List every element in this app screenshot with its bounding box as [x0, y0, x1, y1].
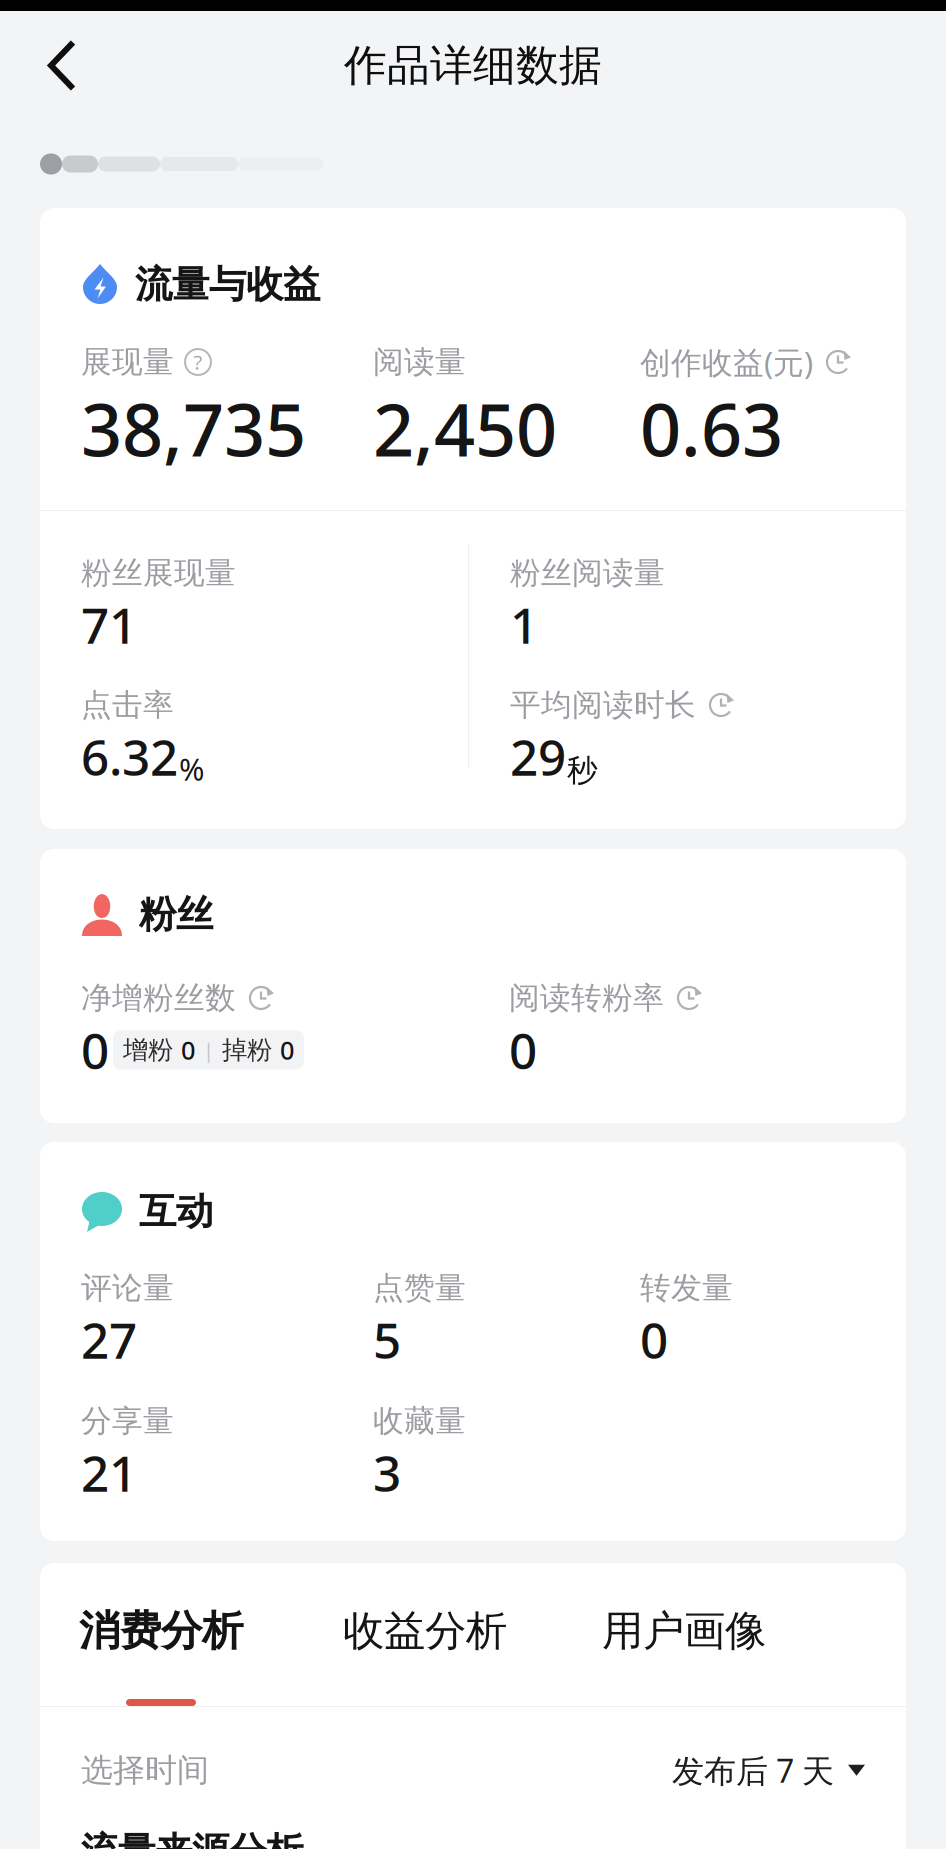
staticText: 互动 [139, 1189, 213, 1234]
staticText: 消费分析 [79, 1606, 243, 1656]
staticText: 流量与收益 [135, 262, 320, 307]
staticText: 0 [280, 1033, 294, 1067]
staticText: 0 [181, 1033, 195, 1067]
staticText: 掉粉 [222, 1034, 272, 1065]
button[interactable]: 收益分析 [343, 1563, 507, 1706]
staticText: 平均阅读时长 [510, 686, 696, 724]
staticText: 29 [510, 724, 566, 789]
button[interactable]: 消费分析 [79, 1563, 243, 1706]
staticText: 用户画像 [602, 1606, 766, 1656]
staticText: 5 [373, 1307, 401, 1372]
staticText: 阅读量 [373, 343, 466, 381]
staticText: 评论量 [81, 1269, 174, 1307]
button[interactable]: Back [0, 15, 111, 115]
staticText: 0 [81, 1017, 109, 1083]
staticText: 3 [373, 1440, 401, 1505]
staticText: 发布后 7 天 [672, 1749, 834, 1791]
staticText: 点赞量 [373, 1269, 466, 1307]
staticText: 收藏量 [373, 1402, 466, 1440]
staticText: 2,450 [373, 381, 557, 476]
staticText: | [203, 1037, 214, 1063]
staticText: ? [193, 349, 202, 375]
staticText: 净增粉丝数 [81, 979, 236, 1017]
staticText: 71 [81, 592, 137, 657]
staticText: 选择时间 [81, 1751, 209, 1790]
staticText: 粉丝 [139, 892, 213, 937]
staticText: % [179, 748, 204, 789]
staticText: 点击率 [81, 686, 174, 724]
staticText: 21 [81, 1440, 137, 1505]
staticText: 秒 [567, 752, 598, 789]
staticText: 创作收益(元) [640, 342, 813, 382]
staticText: 展现量 [81, 343, 174, 381]
staticText: 收益分析 [343, 1606, 507, 1656]
staticText: 1 [510, 592, 538, 657]
staticText: 0 [640, 1307, 668, 1372]
staticText: 27 [81, 1307, 137, 1372]
button[interactable]: 发布后 7 天 [672, 1749, 865, 1791]
staticText: 转发量 [640, 1269, 733, 1307]
staticText: 增粉 [123, 1034, 173, 1065]
staticText: 粉丝展现量 [81, 554, 236, 592]
staticText: 流量来源分析 [81, 1828, 303, 1849]
staticText: 作品详细数据 [344, 39, 602, 92]
staticText: 38,735 [81, 381, 306, 476]
staticText: 0.63 [640, 381, 783, 476]
staticText: 阅读转粉率 [509, 979, 664, 1017]
staticText: 粉丝阅读量 [510, 554, 665, 592]
staticText: 6.32 [81, 724, 178, 789]
staticText: 0 [509, 1017, 537, 1083]
button[interactable]: 用户画像 [602, 1563, 766, 1706]
staticText: 分享量 [81, 1402, 174, 1440]
